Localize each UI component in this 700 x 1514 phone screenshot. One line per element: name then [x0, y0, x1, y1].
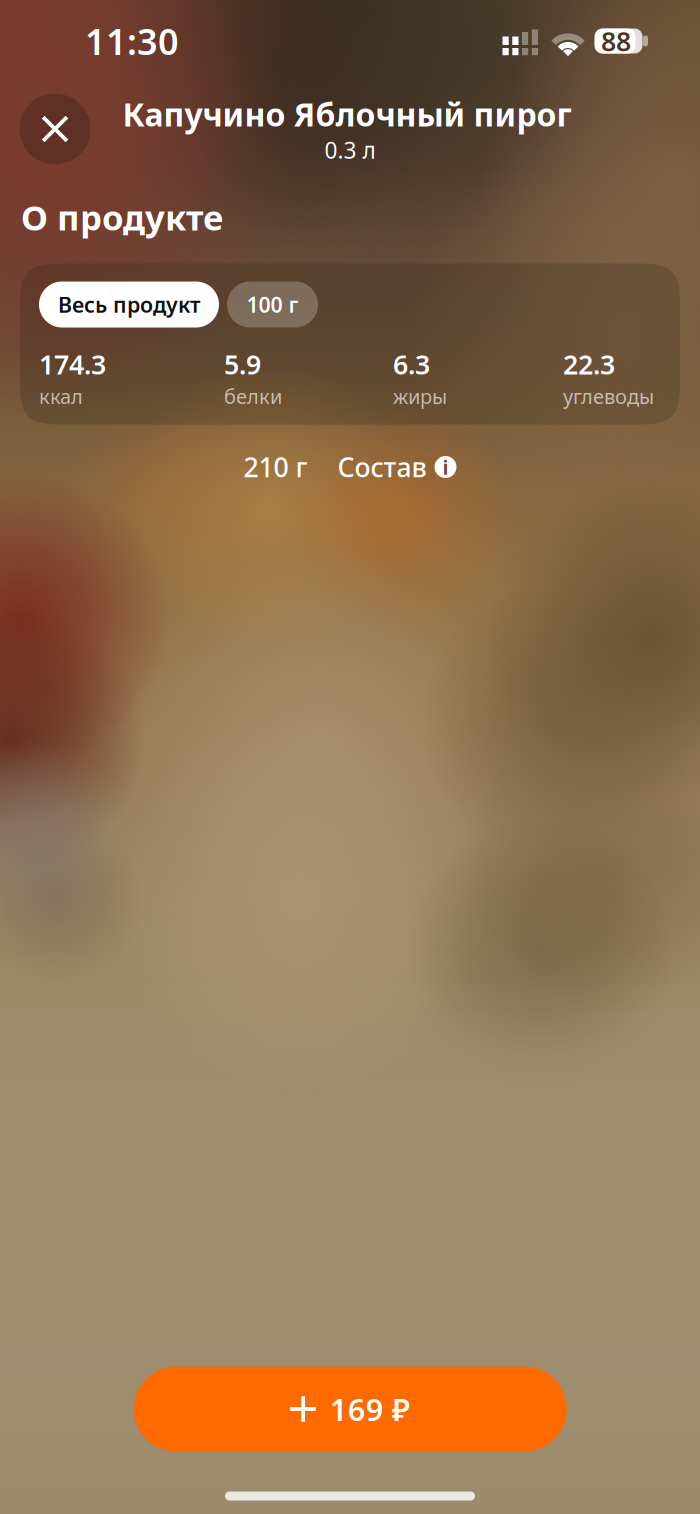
staticText: 6.3 — [393, 346, 430, 382]
button[interactable]: 169 ₽ — [133, 1366, 566, 1451]
staticText: 0.3 л — [324, 135, 375, 165]
staticText: 5.9 — [224, 346, 261, 382]
staticText: i — [442, 454, 448, 480]
staticText: белки — [224, 383, 282, 409]
staticText: жиры — [393, 383, 447, 409]
button[interactable]: Состав — [337, 449, 456, 485]
staticText: 174.3 — [39, 346, 106, 382]
staticText: 11:30 — [85, 17, 179, 65]
staticText: 88 — [601, 23, 631, 59]
staticText: Состав — [337, 449, 426, 485]
button[interactable]: 100 г — [227, 281, 318, 327]
staticText: ккал — [39, 383, 83, 409]
button[interactable]: Закрыть — [19, 93, 90, 164]
button[interactable]: Весь продукт — [39, 281, 219, 327]
staticText: углеводы — [563, 383, 654, 409]
staticText: 22.3 — [563, 346, 615, 382]
staticText: Капучино Яблочный пирог — [122, 93, 571, 135]
staticText: О продукте — [21, 194, 223, 240]
staticText: Весь продукт — [58, 290, 200, 319]
staticText: 169 ₽ — [330, 1389, 410, 1429]
staticText: 210 г — [243, 449, 307, 485]
staticText: 100 г — [246, 290, 298, 319]
